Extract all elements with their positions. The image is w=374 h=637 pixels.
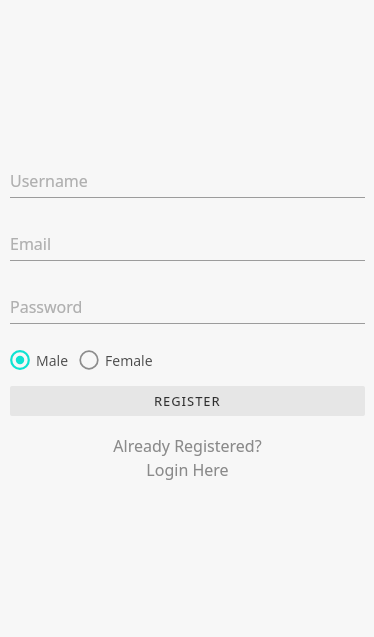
staticText: Female (105, 351, 153, 370)
staticText: Male (36, 351, 69, 370)
button[interactable]: REGISTER (10, 386, 365, 416)
button[interactable]: Username (10, 170, 365, 198)
button[interactable]: Email (10, 233, 365, 261)
staticText: Email (10, 233, 52, 255)
button[interactable]: Password (10, 296, 365, 324)
staticText: Password (10, 296, 83, 318)
button[interactable]: Already Registered? (10, 435, 365, 481)
staticText: REGISTER (154, 392, 221, 410)
button[interactable]: Male (10, 350, 69, 370)
staticText: Already Registered? (113, 435, 262, 457)
staticText: Username (10, 170, 88, 192)
staticText: Login Here (146, 459, 229, 481)
button[interactable]: Female (79, 350, 153, 370)
